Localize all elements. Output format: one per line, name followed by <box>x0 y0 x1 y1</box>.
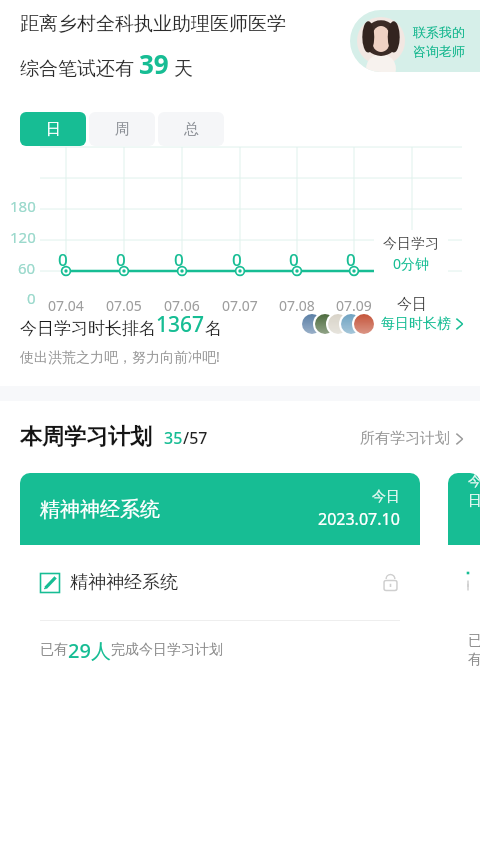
staticText: 周 <box>115 120 130 139</box>
staticText: 精神神经系统 <box>40 497 160 522</box>
staticText: 名 <box>205 318 222 339</box>
staticText: 07.06 <box>164 296 200 315</box>
button[interactable]: 所有学习计划 <box>360 429 464 448</box>
staticText: 0 <box>58 248 68 271</box>
staticText: 0 <box>116 248 126 271</box>
staticText: 2023.07.10 <box>318 508 400 530</box>
staticText: 07.05 <box>106 296 142 315</box>
button[interactable]: 精神神经系统 <box>20 473 420 853</box>
staticText: 07.09 <box>336 296 372 315</box>
other: 已锁定 <box>381 573 400 592</box>
staticText: 咨询老师 <box>413 43 465 59</box>
staticText: 07.07 <box>222 296 258 315</box>
staticText: 今日学习时长排名 <box>20 318 156 339</box>
staticText: 总 <box>184 120 199 139</box>
staticText: 39 <box>139 46 169 81</box>
staticText: 今日学习 <box>383 235 439 253</box>
staticText: 每日时长榜 <box>381 315 451 333</box>
staticText: 本周学习计划 <box>20 423 152 451</box>
staticText: 0 <box>174 248 184 271</box>
button[interactable]: 总 <box>158 112 224 146</box>
staticText: 07.08 <box>279 296 315 315</box>
staticText: 0 <box>27 288 36 308</box>
staticText: 0 <box>232 248 242 271</box>
staticText: 0分钟 <box>393 254 430 273</box>
button[interactable]: 精神神经系统 <box>448 473 480 853</box>
button[interactable]: 日 <box>20 112 86 146</box>
staticText: 35 <box>164 427 183 449</box>
staticText: 1367 <box>156 310 205 339</box>
button[interactable]: 周 <box>89 112 155 146</box>
staticText: 使出洪荒之力吧，努力向前冲吧! <box>20 347 220 366</box>
staticText: 29人 <box>68 637 111 664</box>
staticText: 180 <box>10 196 36 216</box>
staticText: 距离乡村全科执业助理医师医学 <box>20 12 286 36</box>
staticText: 已有 <box>40 641 68 659</box>
button[interactable]: 每日时长榜 <box>300 312 464 336</box>
staticText: 精神神经系统 <box>70 571 178 594</box>
staticText: 所有学习计划 <box>360 429 450 448</box>
staticText: 天 <box>169 55 193 81</box>
staticText: 今日 <box>397 295 427 314</box>
staticText: 0 <box>289 248 299 271</box>
staticText: 今日 <box>372 488 400 506</box>
staticText: 联系我的 <box>413 24 465 40</box>
staticText: 07.04 <box>48 296 84 315</box>
staticText: 完成今日学习计划 <box>111 641 223 659</box>
staticText: 综合笔试还有 <box>20 55 139 81</box>
staticText: 日 <box>46 120 61 139</box>
staticText: 0 <box>346 248 356 271</box>
button[interactable]: 联系我的 <box>350 10 480 72</box>
staticText: /57 <box>183 427 208 449</box>
staticText: 60 <box>18 258 36 278</box>
staticText: 120 <box>10 227 36 247</box>
